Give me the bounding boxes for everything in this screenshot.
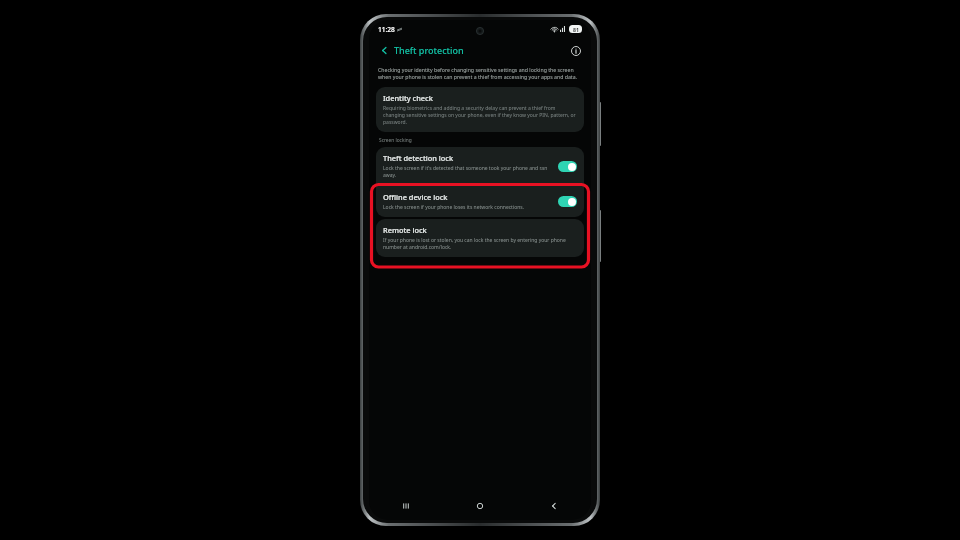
staticText: Identity check	[383, 93, 433, 103]
staticText: 11:28	[378, 25, 395, 34]
button[interactable]: Home	[443, 492, 517, 520]
button[interactable]: Back	[517, 492, 591, 520]
button[interactable]: Theft detection lock	[376, 147, 584, 185]
staticText: Requiring biometrics and adding a securi…	[383, 105, 577, 126]
button[interactable]: Remote lock	[376, 219, 584, 257]
staticText: Remote lock	[383, 225, 427, 235]
button[interactable]: Offline device lock	[376, 186, 584, 217]
button[interactable]: Identity check	[376, 87, 584, 132]
staticText: Screen locking	[379, 137, 412, 144]
button[interactable]: Toggle on	[558, 161, 577, 172]
button[interactable]: Back	[377, 43, 391, 57]
staticText: Theft protection	[394, 44, 464, 56]
staticText: Offline device lock	[383, 192, 448, 202]
button[interactable]: Recents	[369, 492, 443, 520]
staticText: Checking your identity before changing s…	[378, 66, 582, 80]
staticText: 81	[573, 26, 579, 33]
staticText: If your phone is lost or stolen, you can…	[383, 237, 577, 251]
staticText: Lock the screen if it's detected that so…	[383, 165, 552, 179]
button[interactable]: Information	[568, 43, 583, 58]
staticText: Lock the screen if your phone loses its …	[383, 204, 525, 211]
button[interactable]: Toggle on	[558, 196, 577, 207]
staticText: Theft detection lock	[383, 153, 454, 163]
